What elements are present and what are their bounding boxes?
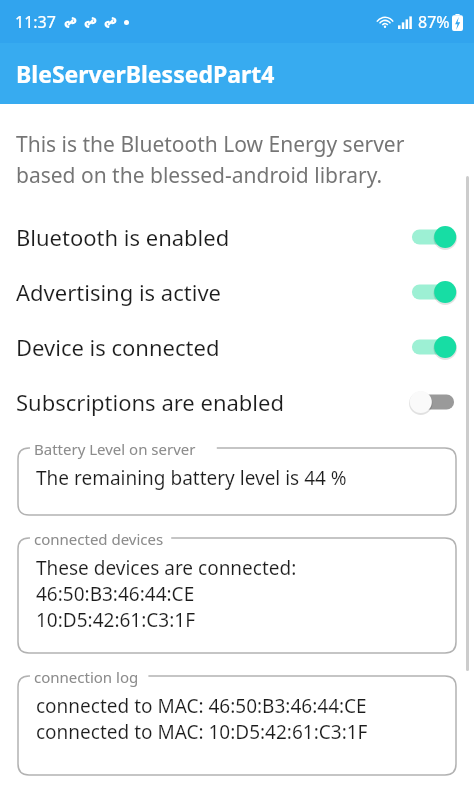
staticText: These devices are connected: xyxy=(36,555,297,581)
button[interactable]: Battery Level on server xyxy=(18,439,456,515)
staticText: 87% xyxy=(418,11,450,33)
button[interactable]: Switch on xyxy=(406,275,460,309)
button[interactable]: Switch on xyxy=(406,220,460,254)
staticText: Advertising is active xyxy=(16,277,221,307)
staticText: Device is connected xyxy=(16,332,220,362)
staticText: connection log xyxy=(34,667,139,687)
staticText: connected to MAC: 46:50:B3:46:44:CE xyxy=(36,693,367,719)
staticText: Subscriptions are enabled xyxy=(16,387,284,417)
button[interactable]: Switch on xyxy=(406,330,460,364)
staticText: connected to MAC: 10:D5:42:61:C3:1F xyxy=(36,719,368,745)
button[interactable]: Device is connected xyxy=(0,319,474,374)
button[interactable]: Bluetooth is enabled xyxy=(0,209,474,264)
staticText: connected devices xyxy=(34,529,164,549)
staticText: 10:D5:42:61:C3:1F xyxy=(36,607,196,633)
staticText: 11:37 xyxy=(15,11,56,33)
staticText: The remaining battery level is 44 % xyxy=(36,465,347,491)
button[interactable]: Advertising is active xyxy=(0,264,474,319)
staticText: Battery Level on server xyxy=(34,439,196,459)
staticText: This is the Bluetooth Low Energy server … xyxy=(16,130,450,189)
button[interactable]: Switch off xyxy=(406,385,460,419)
staticText: BleServerBlessedPart4 xyxy=(16,58,275,89)
button[interactable]: connection log xyxy=(18,667,456,775)
button[interactable]: connected devices xyxy=(18,529,456,653)
button[interactable]: Subscriptions are enabled xyxy=(0,374,474,429)
staticText: Bluetooth is enabled xyxy=(16,222,230,252)
staticText: 46:50:B3:46:44:CE xyxy=(36,581,195,607)
